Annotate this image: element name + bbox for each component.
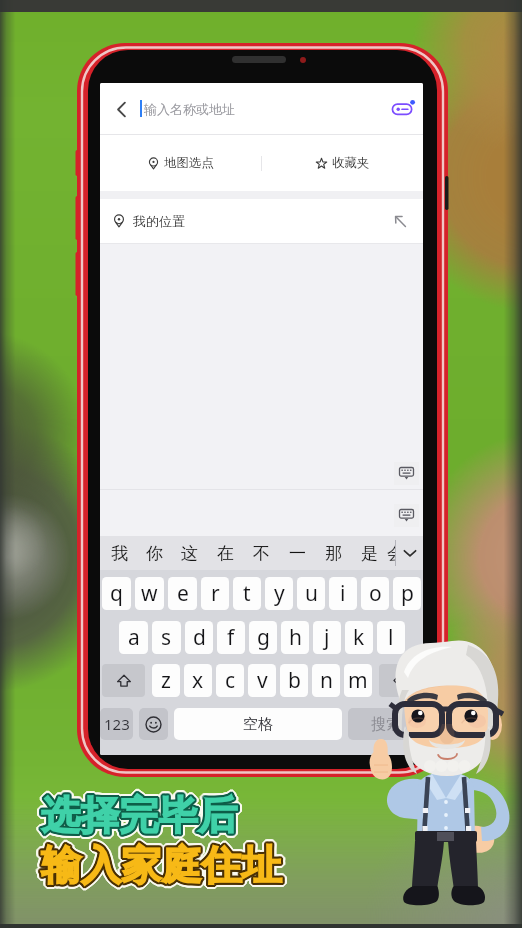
staticText: g bbox=[257, 623, 270, 652]
staticText: o bbox=[369, 579, 382, 608]
button[interactable]: k bbox=[345, 621, 373, 654]
button[interactable]: 收藏夹 bbox=[262, 135, 423, 191]
staticText: x bbox=[192, 666, 204, 695]
staticText: i bbox=[340, 579, 346, 608]
staticText: 输入家庭住址 bbox=[40, 837, 282, 888]
button[interactable]: i bbox=[329, 577, 357, 610]
button[interactable]: t bbox=[233, 577, 261, 610]
button[interactable]: r bbox=[201, 577, 229, 610]
button[interactable]: m bbox=[344, 664, 372, 697]
button[interactable]: d bbox=[185, 621, 213, 654]
button[interactable]: c bbox=[216, 664, 244, 697]
staticText: 选择完毕后 bbox=[40, 791, 236, 840]
button[interactable]: x bbox=[184, 664, 212, 697]
button[interactable]: u bbox=[297, 577, 325, 610]
staticText: 选择完毕后 bbox=[38, 789, 234, 838]
button[interactable]: Voice assistant bbox=[387, 93, 419, 125]
button[interactable]: z bbox=[152, 664, 180, 697]
staticText: 输入家庭住址 bbox=[43, 839, 285, 890]
button[interactable]: 我的位置 bbox=[100, 199, 423, 243]
button[interactable]: n bbox=[312, 664, 340, 697]
staticText: 选择完毕后 bbox=[41, 793, 237, 842]
button[interactable]: j bbox=[313, 621, 341, 654]
staticText: a bbox=[128, 623, 140, 652]
button[interactable]: 会 bbox=[387, 536, 395, 570]
staticText: 输入家庭住址 bbox=[39, 838, 281, 889]
button[interactable]: p bbox=[393, 577, 421, 610]
button[interactable]: Back bbox=[100, 83, 423, 134]
staticText: 输入家庭住址 bbox=[45, 841, 287, 892]
button[interactable]: e bbox=[168, 577, 197, 610]
staticText: 在 bbox=[217, 543, 234, 564]
staticText: 选择完毕后 bbox=[43, 789, 239, 838]
staticText: 选择完毕后 bbox=[42, 795, 238, 844]
button[interactable]: Numbers bbox=[100, 708, 133, 740]
button[interactable]: Emoji bbox=[139, 708, 168, 740]
button[interactable]: 是 bbox=[351, 536, 387, 570]
staticText: 输入家庭住址 bbox=[45, 840, 287, 891]
staticText: 选择完毕后 bbox=[41, 792, 237, 841]
staticText: 输入家庭住址 bbox=[41, 838, 283, 889]
staticText: 选择完毕后 bbox=[40, 792, 236, 841]
staticText: 选择完毕后 bbox=[40, 791, 236, 840]
button[interactable]: Use location bbox=[389, 210, 411, 232]
button[interactable]: f bbox=[217, 621, 245, 654]
button[interactable]: o bbox=[361, 577, 389, 610]
button[interactable]: l bbox=[377, 621, 405, 654]
staticText: 输入家庭住址 bbox=[43, 840, 285, 891]
staticText: 输入家庭住址 bbox=[40, 839, 282, 890]
staticText: q bbox=[110, 579, 123, 608]
staticText: 选择完毕后 bbox=[40, 790, 236, 839]
staticText: 选择完毕后 bbox=[42, 789, 238, 838]
staticText: 我 bbox=[111, 543, 128, 564]
staticText: l bbox=[388, 623, 394, 652]
staticText: 选择完毕后 bbox=[39, 794, 235, 843]
button[interactable]: Hide keyboard bbox=[396, 536, 423, 570]
staticText: 选择完毕后 bbox=[42, 792, 238, 841]
staticText: 输入家庭住址 bbox=[37, 841, 279, 892]
staticText: 输入家庭住址 bbox=[42, 843, 284, 894]
button[interactable]: y bbox=[265, 577, 293, 610]
button[interactable]: 那 bbox=[315, 536, 351, 570]
staticText: 输入家庭住址 bbox=[41, 839, 283, 890]
button[interactable]: Keyboard bbox=[394, 504, 419, 527]
button[interactable]: Keyboard bbox=[394, 462, 419, 485]
button[interactable]: 我 bbox=[102, 536, 137, 570]
staticText: 选择完毕后 bbox=[37, 792, 233, 841]
staticText: 输入家庭住址 bbox=[44, 841, 286, 892]
staticText: 选择完毕后 bbox=[41, 789, 237, 838]
button[interactable]: q bbox=[102, 577, 131, 610]
staticText: 选择完毕后 bbox=[37, 790, 233, 839]
staticText: 选择完毕后 bbox=[41, 789, 237, 838]
staticText: v bbox=[257, 666, 268, 695]
button[interactable]: 不 bbox=[243, 536, 279, 570]
button[interactable]: 在 bbox=[207, 536, 243, 570]
button[interactable]: 一 bbox=[279, 536, 315, 570]
button[interactable]: h bbox=[281, 621, 309, 654]
staticText: s bbox=[161, 623, 172, 652]
button[interactable]: 你 bbox=[137, 536, 172, 570]
staticText: y bbox=[274, 579, 285, 608]
staticText: 选择完毕后 bbox=[45, 791, 241, 840]
staticText: 输入家庭住址 bbox=[38, 839, 280, 890]
staticText: 输入家庭住址 bbox=[42, 837, 284, 888]
staticText: b bbox=[288, 666, 301, 695]
button[interactable]: 空格 bbox=[174, 708, 342, 740]
staticText: 输入家庭住址 bbox=[39, 839, 281, 890]
button[interactable]: g bbox=[249, 621, 277, 654]
staticText: 输入家庭住址 bbox=[40, 840, 282, 891]
button[interactable]: Back bbox=[108, 96, 134, 122]
button[interactable]: b bbox=[280, 664, 308, 697]
staticText: 输入家庭住址 bbox=[43, 842, 285, 893]
button[interactable]: w bbox=[135, 577, 164, 610]
button[interactable]: 地图选点 bbox=[100, 135, 261, 191]
button[interactable]: Shift bbox=[102, 664, 145, 697]
staticText: 选择完毕后 bbox=[38, 792, 234, 841]
button[interactable]: s bbox=[152, 621, 181, 654]
button[interactable]: 这 bbox=[172, 536, 207, 570]
button[interactable]: a bbox=[119, 621, 148, 654]
staticText: 选择完毕后 bbox=[40, 787, 236, 836]
button[interactable]: Delete bbox=[379, 664, 421, 697]
button[interactable]: 搜索 bbox=[348, 708, 423, 740]
button[interactable]: v bbox=[248, 664, 276, 697]
